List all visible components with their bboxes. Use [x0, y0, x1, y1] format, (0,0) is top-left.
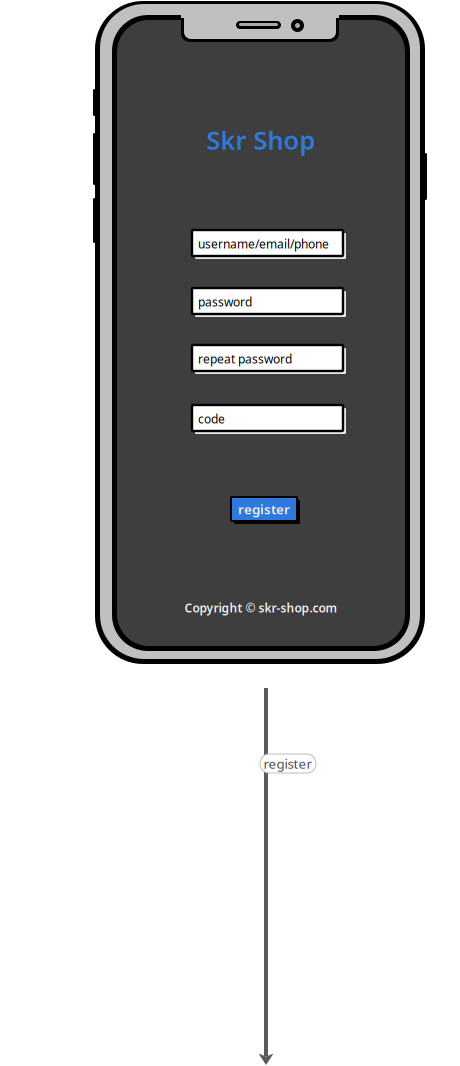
staticText: repeat password: [198, 351, 292, 367]
staticText: Skr Shop: [206, 123, 315, 157]
staticText: password: [198, 294, 252, 310]
staticText: Copyright © skr-shop.com: [184, 600, 337, 616]
staticText: code: [198, 411, 225, 427]
staticText: register: [263, 755, 312, 772]
button[interactable]: register: [231, 497, 300, 524]
staticText: username/email/phone: [198, 236, 329, 252]
staticText: register: [238, 500, 290, 518]
